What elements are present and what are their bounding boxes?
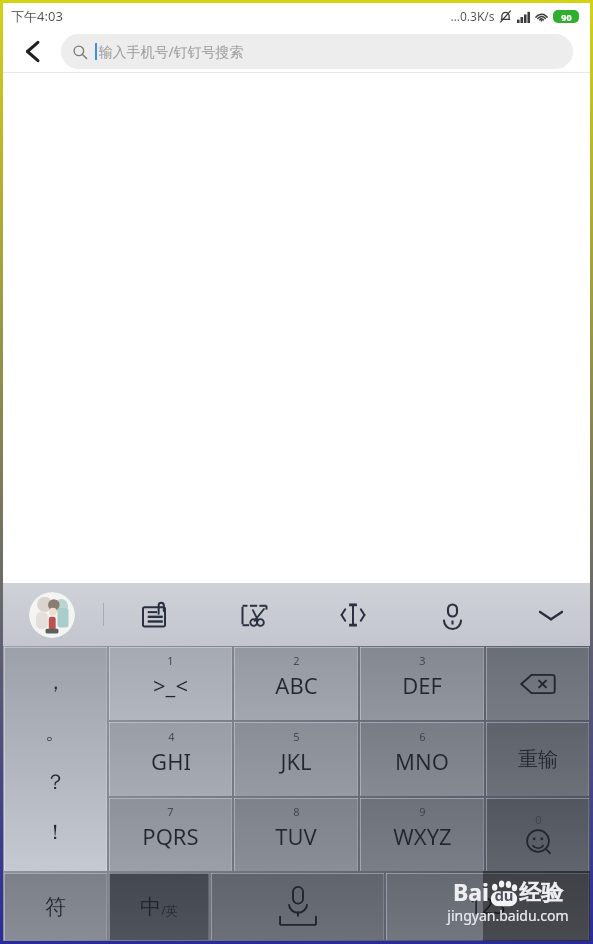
button[interactable]: 重输	[486, 722, 589, 796]
staticText: WXYZ	[393, 821, 452, 851]
staticText: …0.3K/s	[450, 8, 495, 24]
staticText: 经验	[519, 879, 563, 907]
staticText: GHI	[151, 746, 191, 776]
button[interactable]: Move cursor	[327, 589, 379, 641]
button[interactable]: 中	[109, 873, 209, 940]
staticText: 符	[45, 894, 66, 920]
staticText: 9	[419, 804, 426, 819]
button[interactable]: 123	[386, 873, 589, 940]
staticText: 4	[168, 729, 175, 744]
staticText: 1	[167, 653, 174, 668]
staticText: 3	[419, 653, 426, 668]
button[interactable]: Punctuation	[4, 647, 107, 871]
staticText: 输入手机号/钉钉号搜索	[98, 42, 244, 61]
staticText: 0	[535, 812, 542, 827]
staticText: JKL	[280, 746, 312, 776]
button[interactable]: Clipboard	[129, 589, 181, 641]
button[interactable]: 9	[360, 798, 484, 871]
staticText: 中	[140, 894, 161, 920]
button[interactable]: 2	[234, 647, 358, 720]
button[interactable]: 4	[109, 722, 232, 796]
staticText: TUV	[275, 821, 317, 851]
staticText: 8	[293, 804, 300, 819]
button[interactable]: 输入手机号/钉钉号搜索	[61, 34, 573, 69]
button[interactable]: 6	[360, 722, 484, 796]
button[interactable]: Emoji	[486, 798, 589, 871]
staticText: 。	[45, 719, 66, 745]
button[interactable]: Backspace	[486, 647, 589, 720]
staticText: 下午4:03	[11, 7, 63, 25]
button[interactable]: 符	[4, 873, 107, 940]
button[interactable]: Hide keyboard	[525, 589, 577, 641]
staticText: 123	[469, 892, 506, 921]
button[interactable]: Profile	[29, 592, 75, 638]
staticText: ！	[45, 819, 66, 845]
button[interactable]: Voice input	[426, 589, 478, 641]
staticText: PQRS	[142, 821, 199, 851]
staticText: ABC	[275, 670, 318, 700]
staticText: DEF	[402, 670, 442, 700]
button[interactable]: Cut	[228, 589, 280, 641]
button[interactable]: 5	[234, 722, 358, 796]
staticText: 6	[419, 729, 426, 744]
staticText: ？	[45, 769, 66, 795]
staticText: jingyan.baidu.com	[447, 906, 569, 925]
staticText: /英	[161, 902, 178, 918]
staticText: 90	[561, 11, 572, 23]
button[interactable]: 7	[109, 798, 232, 871]
button[interactable]: Back	[3, 29, 61, 73]
button[interactable]: 1	[109, 647, 232, 720]
button[interactable]: 3	[360, 647, 484, 720]
staticText: 2	[293, 653, 300, 668]
button[interactable]: 8	[234, 798, 358, 871]
staticText: 7	[167, 804, 174, 819]
staticText: 5	[293, 729, 300, 744]
button[interactable]: Space	[211, 873, 384, 940]
staticText: Bai	[453, 876, 489, 907]
staticText: du	[494, 885, 514, 905]
staticText: >_<	[153, 670, 188, 700]
staticText: ，	[45, 669, 66, 695]
staticText: 重输	[518, 747, 558, 772]
staticText: MNO	[395, 746, 449, 776]
